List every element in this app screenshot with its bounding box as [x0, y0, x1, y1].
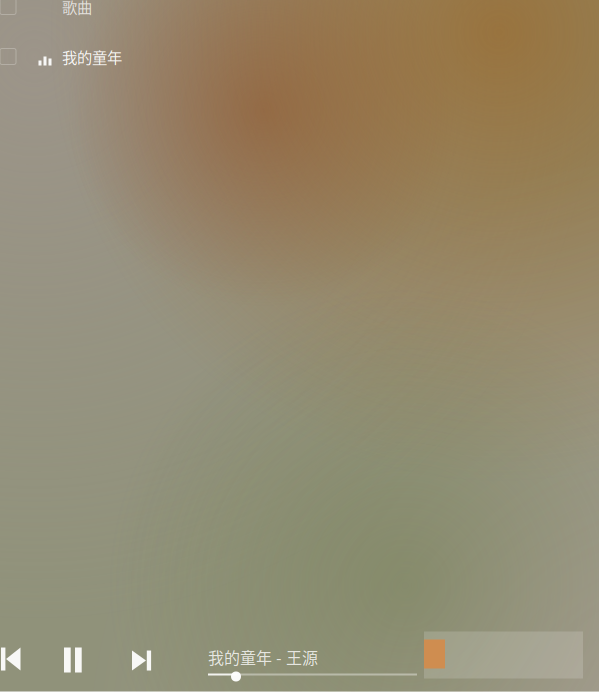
button[interactable]: Next track [132, 647, 151, 670]
button[interactable]: 歌曲 [0, 0, 599, 22]
button[interactable]: Pause [64, 647, 82, 672]
button[interactable]: 我的童年 [0, 40, 599, 72]
staticText: 我的童年 [62, 45, 122, 68]
staticText: 歌曲 [62, 0, 92, 18]
button[interactable]: Previous track [1, 647, 21, 670]
staticText: 我的童年 - 王源 [208, 645, 318, 669]
button[interactable]: Now playing artwork [424, 631, 583, 678]
